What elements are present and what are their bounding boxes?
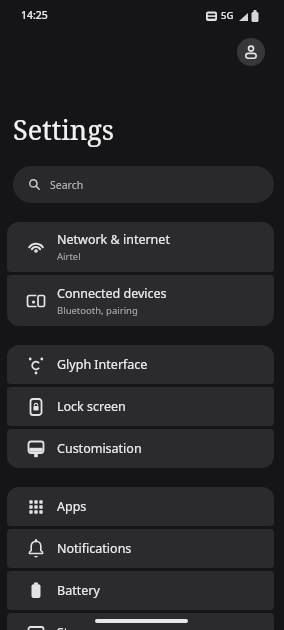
button[interactable]: Customisation	[7, 429, 274, 468]
staticText: Network & internet	[57, 231, 170, 248]
staticText: Search	[50, 178, 84, 192]
button[interactable]: Apps	[7, 487, 274, 526]
staticText: 5G	[221, 9, 234, 22]
staticText: Connected devices	[57, 285, 167, 302]
staticText: 14:25	[21, 8, 48, 22]
staticText: Notifications	[57, 540, 132, 557]
staticText: Glyph Interface	[57, 356, 148, 373]
button[interactable]: Storage	[7, 613, 274, 630]
staticText: Settings	[13, 111, 114, 148]
staticText: Customisation	[57, 440, 142, 457]
button[interactable]: Battery	[7, 571, 274, 610]
button[interactable]: Notifications	[7, 529, 274, 568]
staticText: Lock screen	[57, 398, 126, 415]
staticText: Storage	[57, 624, 103, 630]
staticText: Apps	[57, 498, 87, 515]
staticText: Airtel	[57, 250, 81, 263]
button[interactable]: Connected devices	[7, 275, 274, 326]
button[interactable]: Network & internet	[7, 222, 274, 272]
staticText: Bluetooth, pairing	[57, 304, 138, 317]
button[interactable]: Lock screen	[7, 387, 274, 426]
button[interactable]: Search	[13, 166, 274, 203]
button[interactable]: Glyph Interface	[7, 345, 274, 384]
button[interactable]	[237, 38, 265, 66]
staticText: Battery	[57, 582, 100, 599]
